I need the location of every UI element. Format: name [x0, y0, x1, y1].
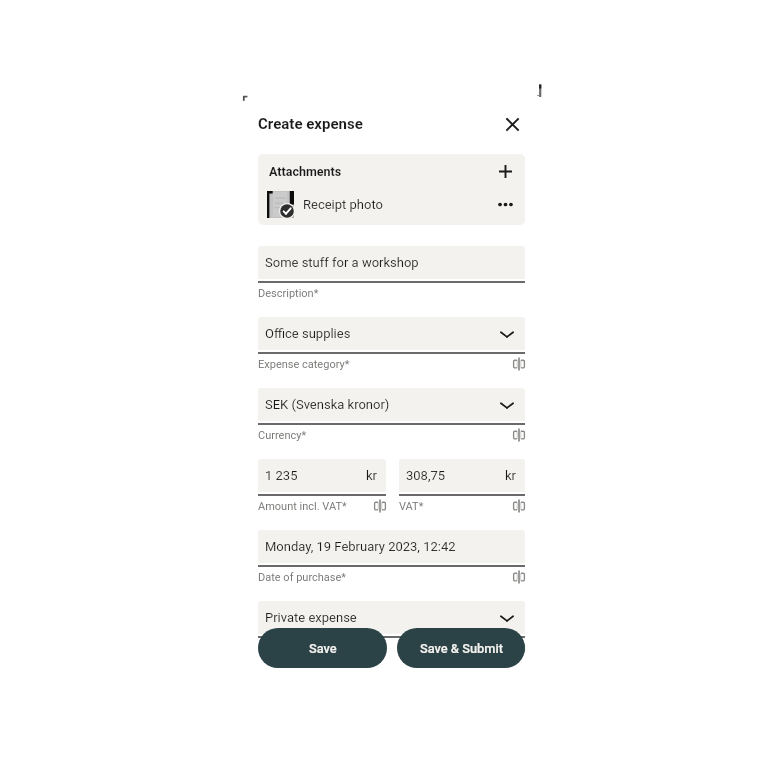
staticText: 308,75 [406, 468, 446, 483]
staticText: Private expense [265, 610, 357, 625]
staticText: 1 235 [265, 468, 298, 483]
staticText: Monday, 19 February 2023, 12:42 [265, 539, 456, 554]
button[interactable]: Save [258, 628, 387, 668]
staticText: Currency* [258, 429, 307, 442]
button[interactable]: Add attachment [495, 161, 515, 181]
button[interactable]: Monday, 19 February 2023, 12:42 [258, 530, 525, 563]
staticText: kr [505, 468, 516, 483]
button[interactable]: Office supplies [258, 317, 525, 350]
staticText: VAT* [399, 500, 424, 513]
button[interactable]: More options [495, 194, 515, 214]
staticText: Save [309, 641, 337, 656]
button[interactable]: Save & Submit [397, 628, 525, 668]
staticText: Receipt photo [303, 197, 383, 212]
staticText: Create expense [258, 115, 363, 133]
staticText: Date of purchase* [258, 571, 347, 584]
button[interactable]: Close [501, 113, 523, 135]
staticText: Save & Submit [420, 641, 503, 656]
staticText: Description* [258, 287, 319, 300]
button[interactable]: Some stuff for a workshop [258, 246, 525, 279]
staticText: Office supplies [265, 326, 351, 341]
staticText: Expense category* [258, 358, 350, 371]
staticText: Some stuff for a workshop [265, 255, 419, 270]
staticText: Private expense [258, 642, 336, 655]
button[interactable]: 308,75 [399, 459, 525, 492]
button[interactable]: SEK (Svenska kronor) [258, 388, 525, 421]
button[interactable]: Private expense [258, 601, 525, 634]
staticText: SEK (Svenska kronor) [265, 397, 390, 412]
staticText: kr [366, 468, 377, 483]
button[interactable]: Receipt photo [267, 187, 515, 221]
button[interactable]: 1 235 [258, 459, 386, 492]
staticText: Amount incl. VAT* [258, 500, 347, 513]
staticText: Attachments [269, 164, 342, 179]
